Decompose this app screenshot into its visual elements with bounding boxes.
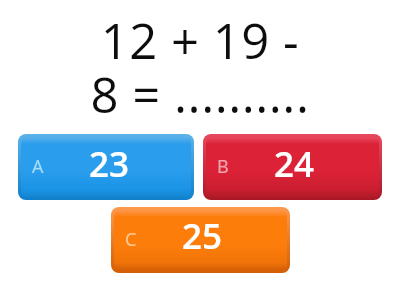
button[interactable]: B [203, 134, 382, 200]
staticText: 25 [182, 212, 222, 260]
button[interactable]: C [111, 207, 290, 273]
staticText: 12 + 19 - 8 = .......... [0, 7, 400, 128]
button[interactable]: A [18, 134, 194, 200]
staticText: A [32, 154, 44, 179]
staticText: 24 [274, 140, 314, 188]
staticText: C [125, 227, 137, 252]
staticText: 23 [89, 140, 129, 188]
staticText: B [217, 154, 229, 179]
